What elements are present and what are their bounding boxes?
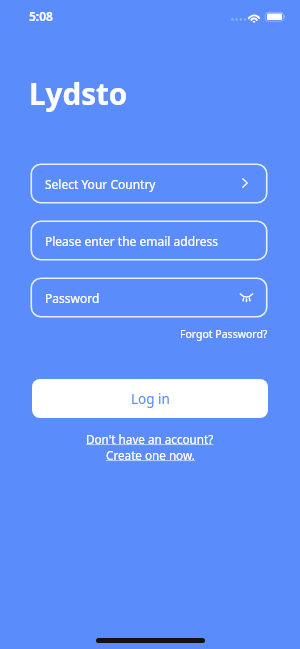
button[interactable]: Select Your Country [31,164,267,203]
staticText: Lydsto [29,73,128,113]
staticText: Don't have an account? [86,431,214,447]
staticText: Log in [131,390,170,408]
button[interactable]: Password [31,278,267,317]
button[interactable]: Please enter the email address [31,221,267,260]
button[interactable]: Don't have an account? [0,431,300,463]
other: Show password [240,293,253,302]
button[interactable]: Forgot Password? [180,327,268,341]
button[interactable]: Log in [32,379,268,418]
staticText: Create one now. [106,447,195,463]
staticText: Please enter the email address [45,233,218,249]
staticText: 5:08 [29,8,53,24]
staticText: Select Your Country [45,176,156,192]
staticText: Password [45,290,100,306]
staticText: Forgot Password? [180,327,268,341]
